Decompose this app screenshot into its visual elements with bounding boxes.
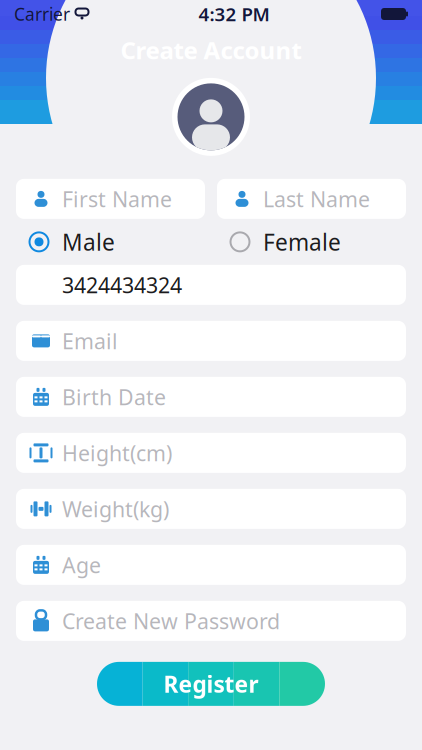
staticText: Create New Password	[62, 607, 280, 635]
staticText: 3424434324	[62, 271, 182, 299]
button[interactable]: Female	[217, 225, 406, 259]
staticText: Age	[62, 551, 101, 579]
button[interactable]: Last Name	[217, 179, 406, 219]
staticText: Carrier	[14, 2, 70, 25]
staticText: Email	[62, 327, 118, 355]
button[interactable]: Create New Password	[16, 601, 406, 641]
staticText: Create Account	[120, 34, 301, 66]
staticText: Male	[62, 227, 115, 257]
staticText: Last Name	[263, 185, 370, 213]
button[interactable]: Email	[16, 321, 406, 361]
staticText: 4:32 PM	[198, 2, 269, 26]
button[interactable]: First Name	[16, 179, 205, 219]
staticText: First Name	[62, 185, 172, 213]
button[interactable]: Height(cm)	[16, 433, 406, 473]
staticText: Height(cm)	[62, 439, 172, 467]
button[interactable]: Weight(kg)	[16, 489, 406, 529]
button[interactable]: 3424434324	[16, 265, 406, 305]
staticText: Female	[263, 227, 341, 257]
button[interactable]: Male	[16, 225, 205, 259]
button[interactable]: Age	[16, 545, 406, 585]
button[interactable]: Birth Date	[16, 377, 406, 417]
button[interactable]: Register	[97, 662, 325, 706]
staticText: Register	[163, 669, 258, 699]
staticText: Birth Date	[62, 383, 166, 411]
staticText: Weight(kg)	[62, 495, 169, 523]
